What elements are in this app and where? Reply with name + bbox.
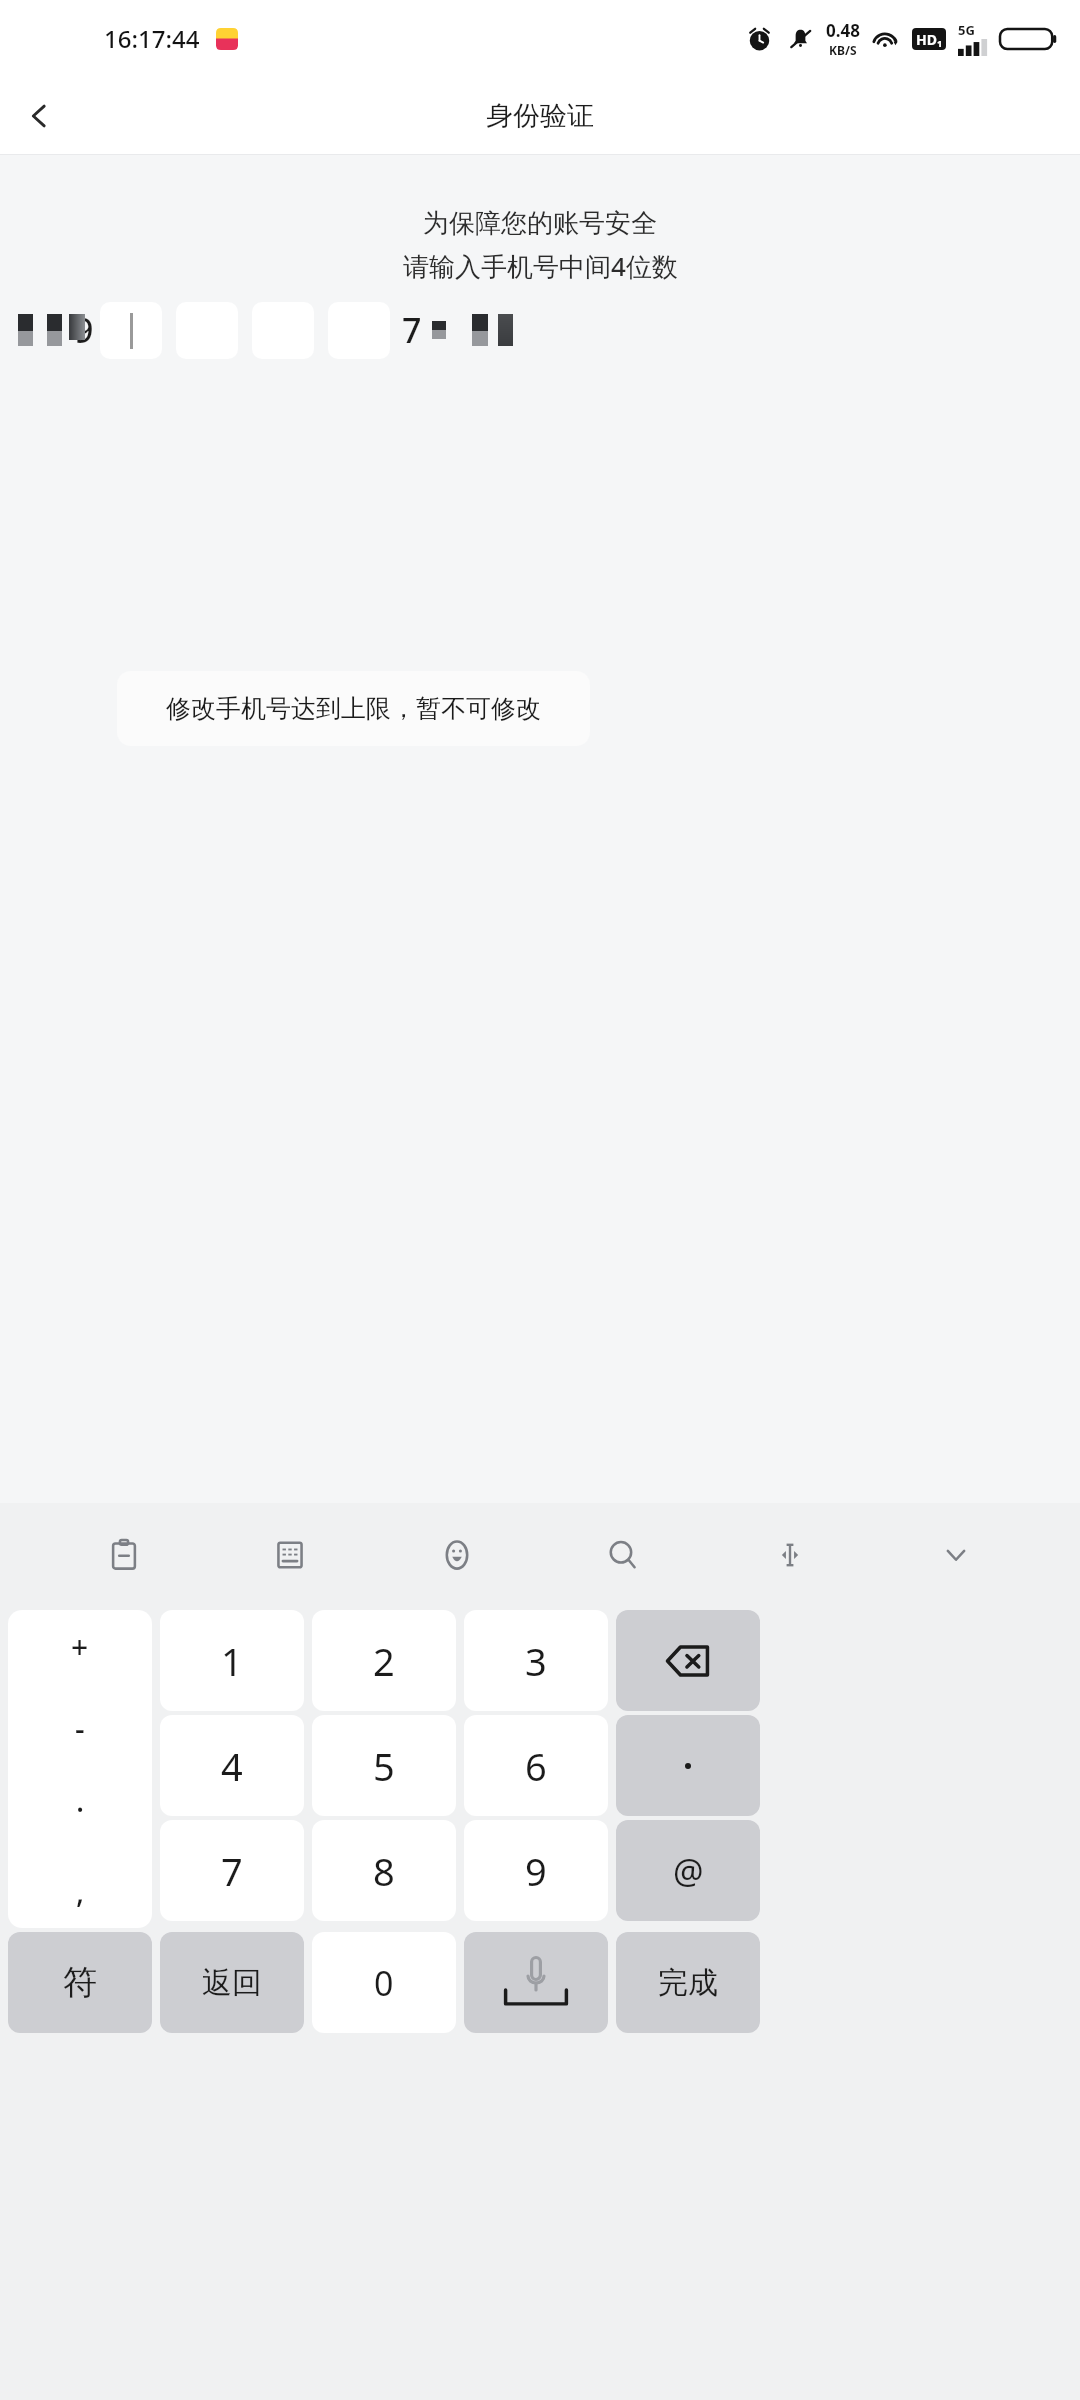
staticText: 符 bbox=[63, 1961, 97, 2004]
button[interactable]: 收起键盘 bbox=[913, 1512, 999, 1598]
staticText: - bbox=[75, 1708, 85, 1749]
staticText: 3 bbox=[525, 1635, 547, 1687]
button[interactable]: 剪贴板 bbox=[81, 1512, 167, 1598]
staticText: 请输入手机号中间4位数 bbox=[403, 248, 678, 284]
button[interactable]: 1 bbox=[160, 1610, 304, 1711]
button[interactable]: 4 bbox=[160, 1715, 304, 1816]
staticText: KB/S bbox=[829, 42, 857, 58]
button[interactable]: 返回 bbox=[160, 1932, 304, 2033]
staticText: 7 bbox=[221, 1845, 243, 1897]
staticText: 身份验证 bbox=[486, 99, 594, 133]
button[interactable] bbox=[100, 302, 162, 359]
button[interactable]: + bbox=[8, 1610, 152, 1928]
staticText: 0.48 bbox=[826, 19, 860, 42]
button[interactable]: 删除 bbox=[616, 1610, 760, 1711]
staticText: · bbox=[76, 1789, 85, 1830]
staticText: + bbox=[71, 1626, 89, 1667]
button[interactable]: 3 bbox=[464, 1610, 608, 1711]
staticText: 2 bbox=[373, 1635, 395, 1687]
button[interactable]: 6 bbox=[464, 1715, 608, 1816]
staticText: @ bbox=[673, 1848, 704, 1894]
staticText: 为保障您的账号安全 bbox=[423, 207, 657, 240]
staticText: 完成 bbox=[658, 1964, 718, 2002]
staticText: 9 bbox=[525, 1845, 547, 1897]
button[interactable]: 5 bbox=[312, 1715, 456, 1816]
button[interactable]: 搜索 bbox=[580, 1512, 666, 1598]
staticText: 5 bbox=[373, 1740, 395, 1792]
button[interactable]: 符 bbox=[8, 1932, 152, 2033]
button[interactable] bbox=[616, 1715, 760, 1816]
button[interactable]: 8 bbox=[312, 1820, 456, 1921]
button[interactable]: @ bbox=[616, 1820, 760, 1921]
button[interactable]: 2 bbox=[312, 1610, 456, 1711]
button[interactable]: 空格 语音输入 bbox=[464, 1932, 608, 2033]
button[interactable]: 0 bbox=[312, 1932, 456, 2033]
staticText: 7 bbox=[402, 307, 422, 353]
button[interactable]: 键盘设置 bbox=[247, 1512, 333, 1598]
staticText: 9 bbox=[74, 307, 94, 353]
button[interactable]: 完成 bbox=[616, 1932, 760, 2033]
staticText: , bbox=[76, 1871, 85, 1912]
staticText: 16:17:44 bbox=[104, 22, 200, 55]
staticText: 4 bbox=[221, 1740, 243, 1792]
staticText: 0 bbox=[374, 1960, 394, 2006]
button[interactable]: 表情 bbox=[414, 1512, 500, 1598]
staticText: 5G bbox=[958, 21, 975, 39]
staticText: 8 bbox=[373, 1845, 395, 1897]
staticText: 修改手机号达到上限，暂不可修改 bbox=[166, 693, 541, 724]
staticText: HD₁ bbox=[916, 30, 943, 49]
staticText: 返回 bbox=[202, 1964, 262, 2002]
staticText: 6 bbox=[525, 1740, 547, 1792]
button[interactable]: 返回 bbox=[0, 77, 78, 154]
staticText: 1 bbox=[221, 1635, 243, 1687]
button[interactable]: 9 bbox=[464, 1820, 608, 1921]
button[interactable]: 移动光标 bbox=[747, 1512, 833, 1598]
button[interactable]: 7 bbox=[160, 1820, 304, 1921]
